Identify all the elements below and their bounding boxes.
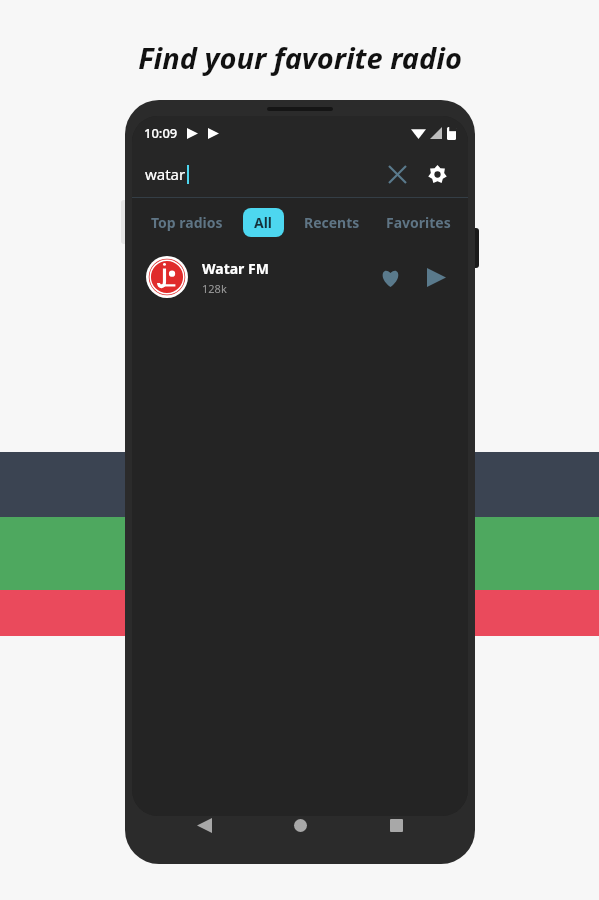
staticText: Recents [304, 213, 360, 232]
button[interactable]: All [243, 208, 284, 237]
button[interactable]: Recents [298, 208, 366, 237]
button[interactable]: Favorite [372, 259, 408, 295]
button[interactable]: Back [187, 808, 221, 842]
staticText: Find your favorite radio [138, 38, 462, 77]
button[interactable]: Home [283, 808, 317, 842]
staticText: All [254, 213, 273, 232]
staticText: Watar FM [202, 259, 269, 278]
button[interactable]: Settings [420, 157, 454, 191]
button[interactable]: Favorites [380, 208, 457, 237]
button[interactable]: Top radios [145, 208, 229, 237]
button[interactable]: Watar FM [132, 246, 468, 308]
button[interactable]: Play [418, 259, 454, 295]
staticText: watar [145, 164, 186, 184]
staticText: Top radios [151, 213, 223, 232]
button[interactable]: Clear search [380, 157, 414, 191]
staticText: Favorites [386, 213, 451, 232]
button[interactable]: Recents [379, 808, 413, 842]
staticText: 10:09 [144, 124, 178, 142]
staticText: 128k [202, 281, 227, 296]
